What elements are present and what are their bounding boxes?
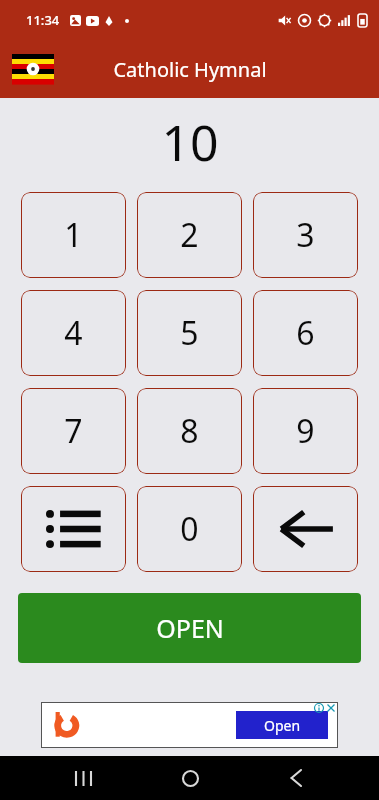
staticText: 6 [296, 311, 315, 355]
staticText: 4 [64, 311, 83, 355]
button[interactable]: Back [272, 756, 320, 800]
button[interactable]: 3 [253, 192, 358, 278]
staticText: 10 [161, 108, 219, 170]
button[interactable]: Uganda flag [12, 54, 54, 84]
button[interactable]: 8 [137, 388, 242, 474]
staticText: 11:34 [26, 11, 60, 29]
staticText: Catholic Hymnal [113, 56, 267, 83]
button[interactable]: 6 [253, 290, 358, 376]
button[interactable]: Advertisement [41, 702, 338, 748]
button[interactable]: Show hymn list [21, 486, 126, 572]
staticText: 3 [296, 213, 315, 257]
staticText: 1 [64, 213, 83, 257]
button[interactable]: 1 [21, 192, 126, 278]
staticText: OPEN [156, 611, 224, 645]
button[interactable]: Backspace [253, 486, 358, 572]
staticText: 8 [180, 409, 199, 453]
staticText: 9 [296, 409, 315, 453]
button[interactable]: 4 [21, 290, 126, 376]
button[interactable]: OPEN [18, 593, 361, 663]
button[interactable]: Home [166, 756, 214, 800]
staticText: Open [264, 716, 301, 735]
button[interactable]: 2 [137, 192, 242, 278]
button[interactable]: 9 [253, 388, 358, 474]
button[interactable]: Open [236, 711, 328, 739]
button[interactable]: Recents [59, 756, 107, 800]
button[interactable]: 0 [137, 486, 242, 572]
staticText: 0 [180, 507, 199, 551]
staticText: 7 [64, 409, 83, 453]
button[interactable]: 7 [21, 388, 126, 474]
staticText: 5 [180, 311, 199, 355]
button[interactable]: 5 [137, 290, 242, 376]
staticText: 2 [180, 213, 199, 257]
